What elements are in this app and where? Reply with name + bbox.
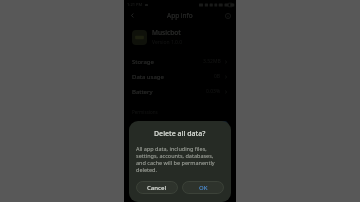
button[interactable]: Battery: [124, 84, 236, 99]
staticText: 0.03%: [206, 88, 221, 95]
button[interactable]: OK: [182, 181, 224, 194]
button[interactable]: Musicbot: [124, 26, 236, 48]
button[interactable]: Data usage: [124, 69, 236, 84]
button[interactable]: Storage: [124, 54, 236, 69]
staticText: Storage: [132, 58, 154, 66]
staticText: Delete all data?: [154, 129, 206, 139]
staticText: Autostart: [132, 121, 159, 129]
staticText: All app data, including files, settings,…: [136, 145, 224, 173]
staticText: OK: [199, 184, 208, 192]
staticText: 3.52MB: [203, 58, 221, 65]
staticText: Musicbot: [152, 28, 181, 37]
button[interactable]: Back: [127, 10, 138, 21]
staticText: Data usage: [132, 73, 164, 81]
staticText: Permissions: [132, 109, 158, 115]
staticText: Version 1.0.0: [152, 39, 183, 46]
staticText: Cancel: [147, 184, 167, 192]
staticText: 1:21 PM: [127, 2, 143, 7]
staticText: 0B: [214, 73, 221, 80]
staticText: App info: [167, 11, 193, 20]
button[interactable]: Autostart: [124, 117, 236, 132]
button[interactable]: Cancel: [136, 181, 178, 194]
button[interactable]: About: [222, 10, 233, 21]
staticText: Battery: [132, 88, 153, 96]
